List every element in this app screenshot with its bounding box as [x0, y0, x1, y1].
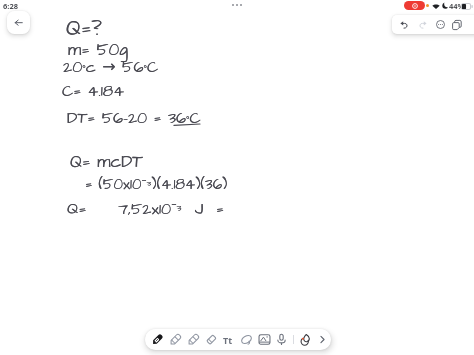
staticText: Q= mcDT	[70, 150, 143, 174]
button[interactable]: Eraser	[202, 329, 220, 350]
button[interactable]: Pencil	[166, 329, 184, 350]
staticText: 44%	[449, 1, 465, 11]
staticText: m= 50g	[68, 38, 128, 62]
button[interactable]: Voice note	[272, 329, 290, 350]
staticText: Q= mcDT	[70, 150, 143, 174]
staticText: 6:28	[3, 1, 18, 11]
staticText: 20°c → 56°C	[63, 56, 159, 78]
staticText: Tt	[223, 334, 233, 346]
button[interactable]: Ink colour	[296, 329, 314, 350]
button[interactable]: Text	[219, 329, 237, 350]
staticText: Q= 7,52x10⁻³ J =	[67, 197, 224, 221]
button[interactable]: Insert image	[255, 329, 273, 350]
button[interactable]: More options	[431, 15, 449, 34]
staticText: Q= 7,52x10⁻³ J =	[67, 197, 224, 221]
staticText: DT= 56-20 = 36°C	[67, 107, 201, 129]
button[interactable]: Redo	[414, 15, 432, 34]
staticText: m= 50g	[68, 38, 128, 62]
staticText: = (50x10⁻³)(4.184)(36)	[85, 173, 228, 195]
button[interactable]: Pen	[148, 329, 166, 350]
staticText: Q=?	[66, 14, 102, 43]
button[interactable]: Highlighter	[184, 329, 202, 350]
button[interactable]: Lasso select	[237, 329, 255, 350]
staticText: 20°c → 56°C	[63, 56, 159, 78]
staticText: DT= 56-20 = 36°C	[67, 107, 201, 129]
staticText: C= 4.184	[62, 80, 125, 102]
staticText: Q=?	[66, 14, 102, 43]
staticText: = (50x10⁻³)(4.184)(36)	[85, 173, 228, 195]
button[interactable]: Undo	[395, 15, 413, 34]
staticText: C= 4.184	[62, 80, 125, 102]
button[interactable]: Duplicate page	[448, 15, 466, 34]
button[interactable]: Back	[7, 11, 30, 34]
button[interactable]: More tools	[313, 329, 331, 350]
